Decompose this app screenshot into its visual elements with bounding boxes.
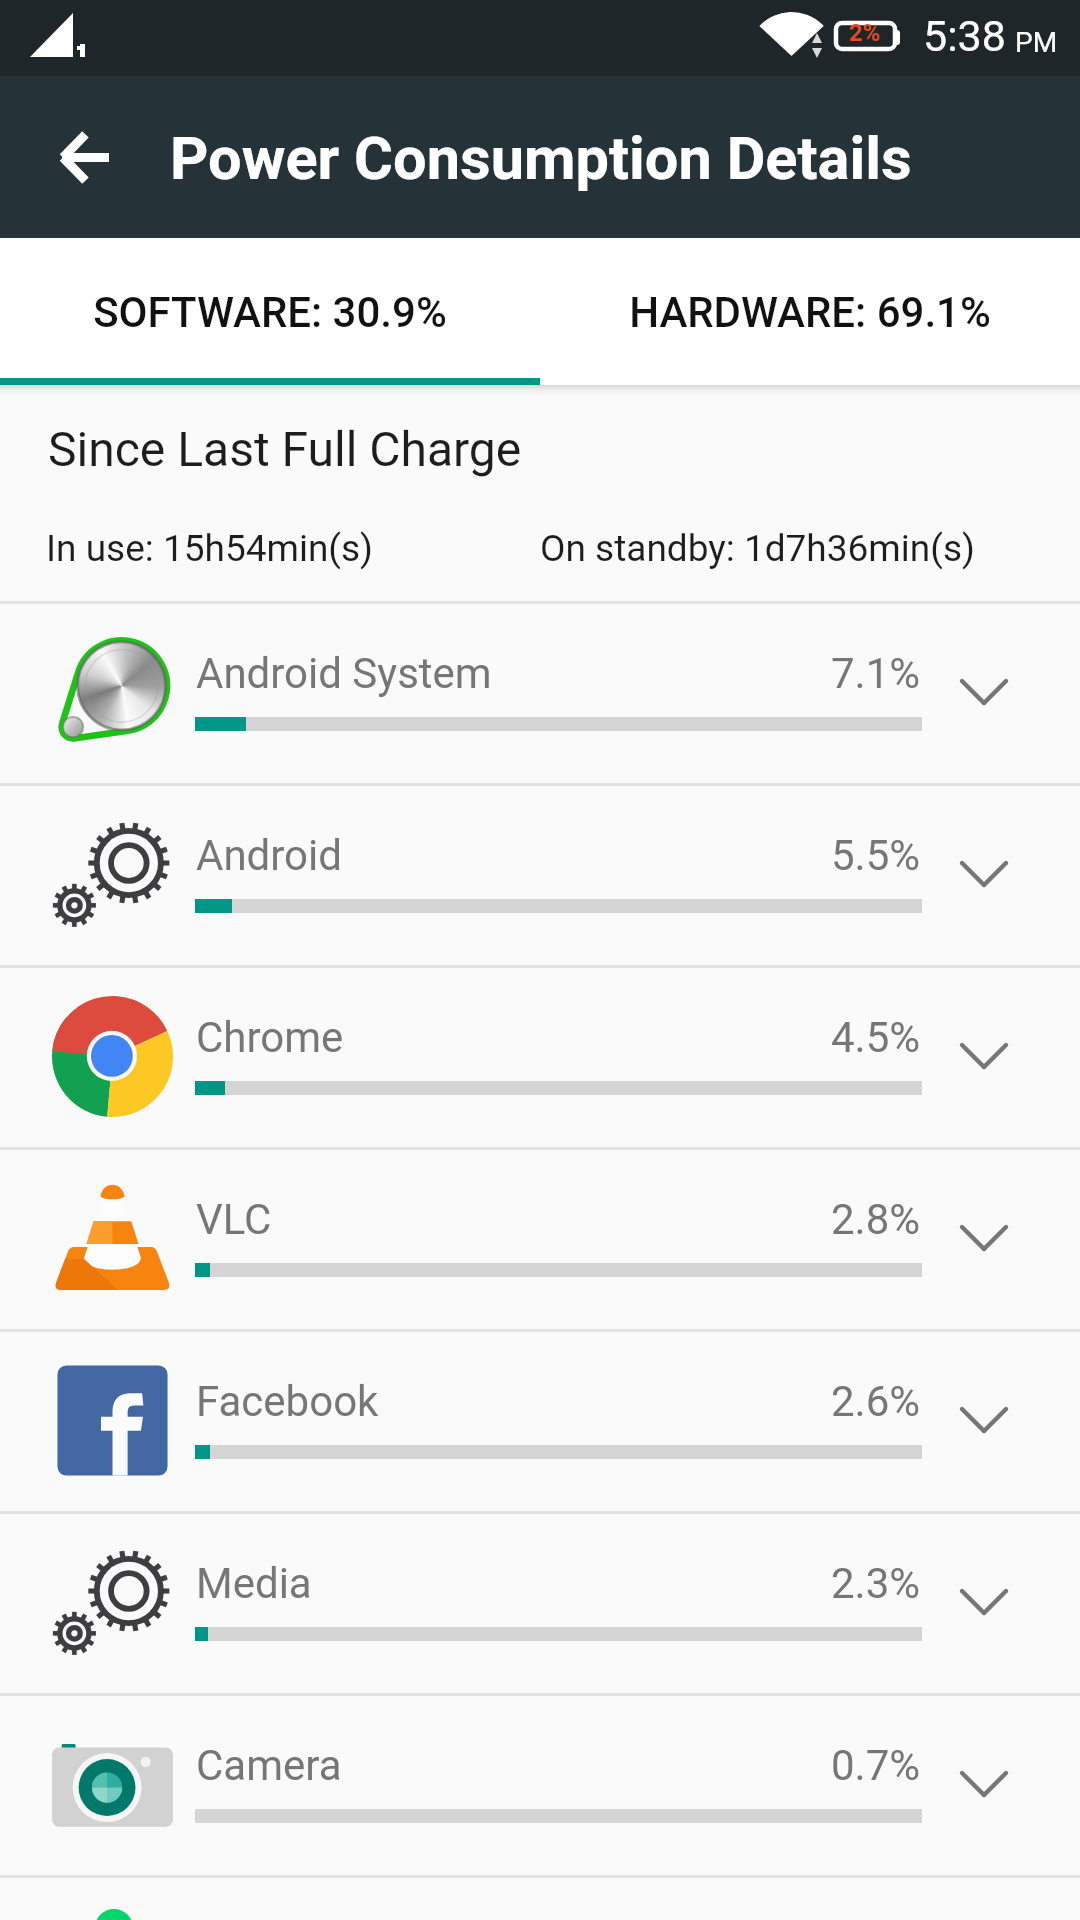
staticText: Facebook [196, 1377, 379, 1426]
staticText: Chrome [196, 1013, 344, 1062]
staticText: 2% [849, 19, 881, 47]
staticText: Media [196, 1559, 312, 1608]
staticText: VLC [196, 1195, 272, 1244]
button[interactable]: Expand details for Camera [944, 1744, 1024, 1824]
button[interactable]: Android [0, 786, 1080, 965]
button[interactable]: Camera [0, 1696, 1080, 1875]
button[interactable]: Expand details for Media [944, 1562, 1024, 1642]
button[interactable]: SOFTWARE: 30.9% [0, 238, 540, 378]
staticText: Power Consumption Details [170, 124, 912, 194]
staticText: 7.1% [700, 649, 920, 698]
staticText: PM [1015, 26, 1058, 59]
staticText: HARDWARE: 69.1% [629, 288, 991, 337]
staticText: On standby: 1d7h36min(s) [540, 527, 975, 570]
staticText: 4.5% [700, 1013, 920, 1062]
button[interactable]: Back [28, 101, 140, 213]
staticText: 5:38 [923, 11, 1006, 61]
staticText: Android System [196, 649, 492, 698]
button[interactable]: Expand details for Android [944, 834, 1024, 914]
button[interactable]: Chrome [0, 968, 1080, 1147]
button[interactable]: Expand details for VLC [944, 1198, 1024, 1278]
button[interactable]: Media [0, 1514, 1080, 1693]
staticText: Camera [196, 1741, 342, 1790]
button[interactable]: Facebook [0, 1332, 1080, 1511]
staticText: 2.3% [700, 1559, 920, 1608]
staticText: SOFTWARE: 30.9% [93, 288, 447, 337]
staticText: 2.6% [700, 1377, 920, 1426]
button[interactable]: Expand details for Facebook [944, 1380, 1024, 1460]
button[interactable]: HARDWARE: 69.1% [540, 238, 1080, 378]
button[interactable]: Expand details for Chrome [944, 1016, 1024, 1096]
staticText: 5.5% [700, 831, 920, 880]
staticText: Since Last Full Charge [48, 421, 522, 477]
staticText: 2.8% [700, 1195, 920, 1244]
button[interactable]: Android System [0, 604, 1080, 783]
button[interactable]: Expand details for Android System [944, 652, 1024, 732]
staticText: Android [196, 831, 342, 880]
button[interactable]: VLC [0, 1150, 1080, 1329]
staticText: In use: 15h54min(s) [46, 527, 374, 570]
staticText: 0.7% [700, 1741, 920, 1790]
